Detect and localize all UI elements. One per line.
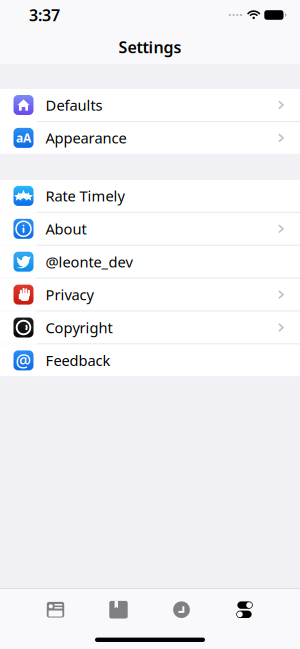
staticText: aA <box>16 130 31 146</box>
staticText: Appearance <box>45 128 126 148</box>
staticText: About <box>45 219 86 239</box>
staticText: Copyright <box>45 318 112 337</box>
button[interactable]: @leonte_dev <box>0 246 300 278</box>
staticText: Feedback <box>45 351 110 370</box>
staticText: @ <box>15 349 31 372</box>
button[interactable]: Privacy <box>0 279 300 311</box>
staticText: 3:37 <box>29 4 60 26</box>
staticText: Rate Timely <box>45 186 124 206</box>
button[interactable]: @ <box>0 344 300 376</box>
button[interactable]: Read Later <box>150 597 213 623</box>
button[interactable]: Defaults <box>0 89 300 121</box>
staticText: @leonte_dev <box>45 252 132 271</box>
staticText: Settings <box>118 36 181 58</box>
staticText: Privacy <box>45 285 93 304</box>
staticText: Defaults <box>45 95 102 115</box>
button[interactable]: Settings <box>213 597 276 623</box>
button[interactable]: Rate Timely <box>0 180 300 212</box>
button[interactable]: Today <box>24 597 87 623</box>
button[interactable]: About <box>0 213 300 245</box>
button[interactable]: Copyright <box>0 311 300 343</box>
button[interactable]: Saved <box>87 597 150 623</box>
button[interactable]: aA <box>0 122 300 154</box>
